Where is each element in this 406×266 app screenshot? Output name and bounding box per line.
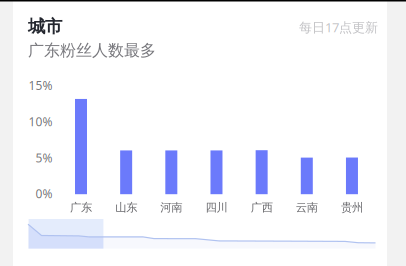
staticText: 5% [35, 150, 52, 166]
staticText: 四川 [205, 200, 227, 215]
staticText: 山东 [115, 200, 137, 215]
staticText: 广西 [251, 200, 273, 215]
staticText: 广东粉丝人数最多 [28, 40, 156, 61]
staticText: 河南 [160, 200, 182, 215]
staticText: 10% [28, 113, 52, 130]
staticText: 广东 [70, 200, 92, 215]
staticText: 每日17点更新 [299, 18, 378, 36]
staticText: 15% [28, 77, 52, 93]
button[interactable]: 调整显示范围 [0, 0, 406, 266]
staticText: 0% [35, 185, 52, 202]
staticText: 贵州 [341, 200, 363, 215]
staticText: 云南 [296, 200, 318, 215]
staticText: 城市 [28, 16, 62, 37]
